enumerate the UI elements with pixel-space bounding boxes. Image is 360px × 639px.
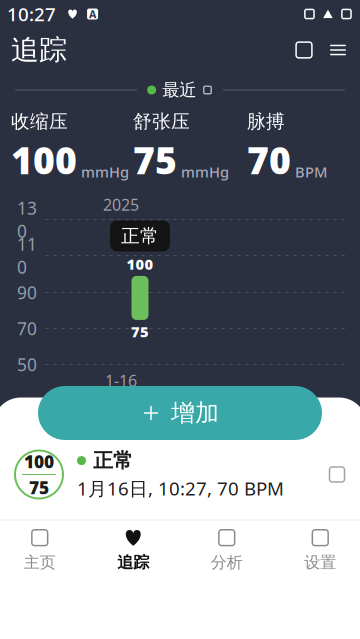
staticText: 100 [24,450,54,473]
staticText: 收缩压 [11,110,68,133]
button[interactable]: 最近 [147,79,213,101]
button[interactable]: 设置 [273,521,360,577]
staticText: mmHg [181,162,229,181]
staticText: 舒张压 [133,110,190,133]
staticText: 50 [17,353,37,376]
staticText: 130 [17,196,37,242]
staticText: BPM [295,162,327,181]
staticText: 主页 [24,553,56,572]
button[interactable]: 分析 [180,521,273,577]
button[interactable]: Menu [321,33,355,67]
staticText: 70 [247,135,291,184]
staticText: 脉搏 [247,110,285,133]
staticText: 2025 [103,194,139,215]
staticText: 10:27 [7,2,56,26]
staticText: 最近 [162,79,196,101]
staticText: 75 [131,322,149,341]
staticText: 追踪 [11,33,67,67]
button[interactable]: 追踪 [86,521,180,577]
staticText: 1月16日, 10:27, 70 BPM [77,476,284,501]
staticText: 70 [17,317,37,340]
staticText: 正常 [121,224,159,247]
staticText: A [89,7,96,21]
button[interactable]: 100 [0,437,360,511]
button[interactable]: 主页 [0,521,86,577]
staticText: 分析 [211,553,243,572]
staticText: 75 [29,476,49,499]
staticText: 增加 [171,398,219,428]
staticText: 75 [133,135,177,184]
staticText: 设置 [304,553,336,572]
button[interactable]: Heart rate [287,33,321,67]
button[interactable]: 增加 [38,386,322,440]
staticText: 追踪 [117,553,149,572]
staticText: mmHg [81,162,129,181]
staticText: 110 [17,232,37,278]
staticText: 100 [126,254,153,274]
staticText: 1-16 [105,370,137,391]
staticText: 正常 [93,448,133,473]
staticText: 100 [11,135,77,184]
staticText: 90 [17,281,37,304]
